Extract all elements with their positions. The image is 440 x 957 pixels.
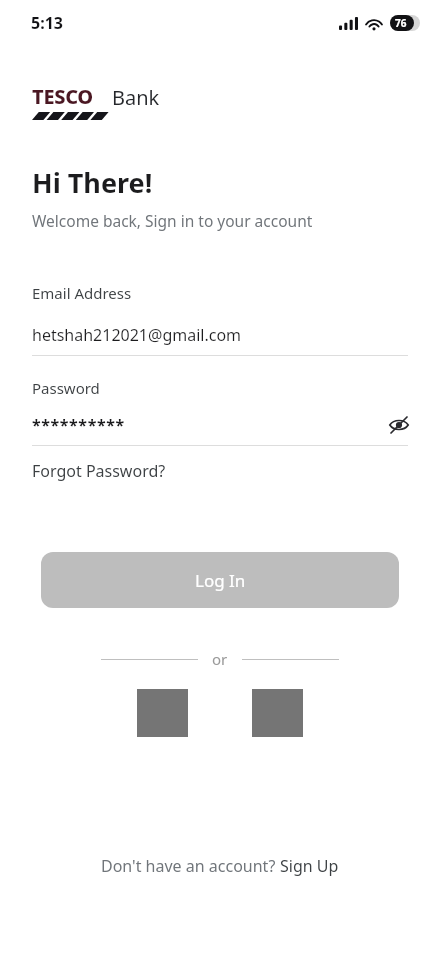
button[interactable]: Don't have an account? xyxy=(0,849,440,883)
staticText: Password xyxy=(32,378,100,398)
staticText: Welcome back, Sign in to your account xyxy=(32,210,313,231)
staticText: Log In xyxy=(195,569,246,592)
staticText: Don't have an account? xyxy=(101,855,280,877)
staticText: ********** xyxy=(32,414,384,436)
button[interactable]: Forgot Password? xyxy=(32,460,166,482)
staticText: 76 xyxy=(395,16,407,30)
staticText: 5:13 xyxy=(31,12,63,34)
staticText: Sign Up xyxy=(280,855,339,877)
staticText: TESCO xyxy=(32,83,93,110)
staticText: Bank xyxy=(112,84,160,111)
staticText: Forgot Password? xyxy=(32,460,166,482)
button[interactable]: Show password xyxy=(384,410,414,440)
button[interactable]: Log In xyxy=(41,552,399,608)
staticText: Email Address xyxy=(32,283,132,303)
staticText: or xyxy=(212,649,228,669)
staticText: hetshah212021@gmail.com xyxy=(32,324,242,346)
staticText: Hi There! xyxy=(32,164,153,201)
